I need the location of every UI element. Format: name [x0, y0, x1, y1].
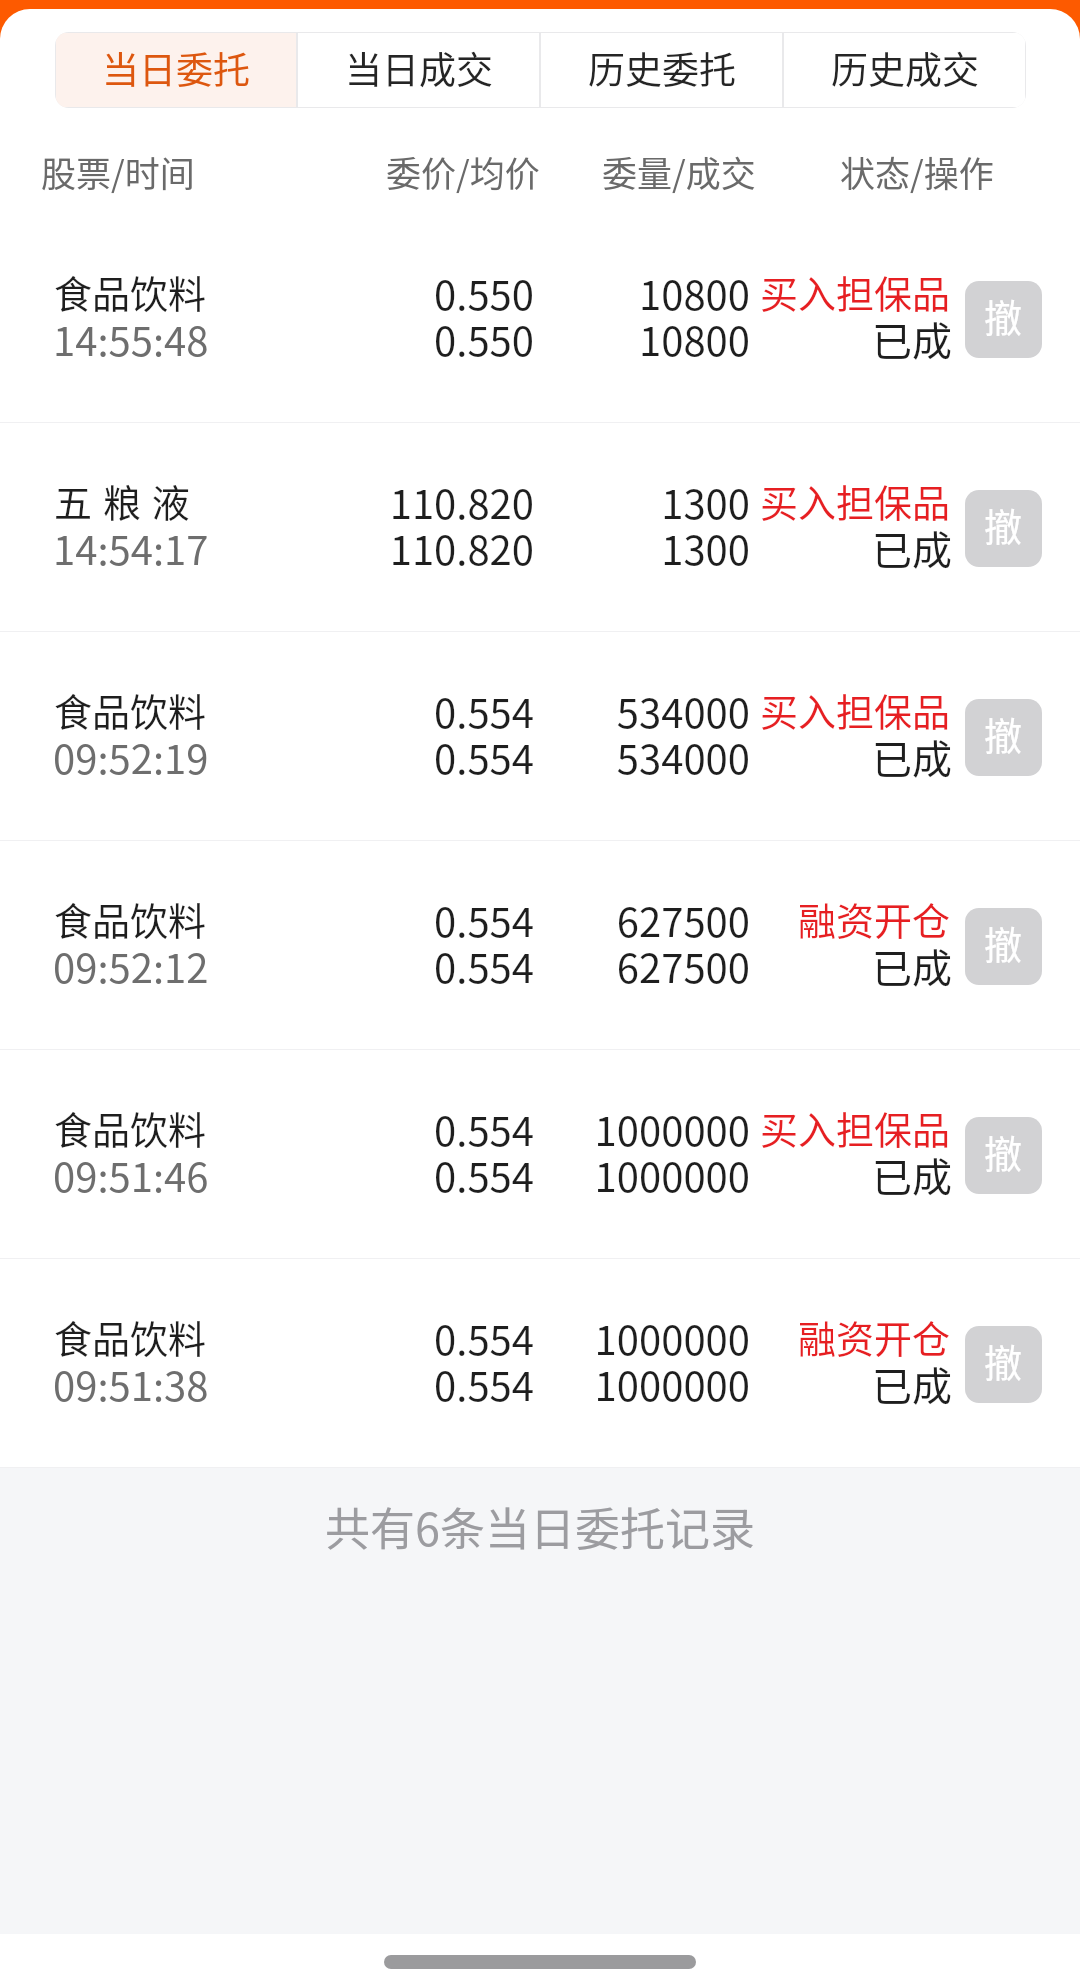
staticText: 已成 — [752, 519, 952, 577]
staticText: 已成 — [752, 728, 952, 786]
staticText: 0.554 — [334, 1309, 534, 1367]
staticText: 当日委托 — [102, 41, 250, 95]
staticText: 委价/均价 — [386, 146, 540, 197]
staticText: 0.554 — [334, 891, 534, 949]
staticText: 10800 — [550, 264, 750, 322]
staticText: 历史成交 — [831, 41, 979, 95]
button[interactable]: 撤单 — [965, 281, 1042, 358]
staticText: 1000000 — [550, 1355, 750, 1413]
staticText: 534000 — [550, 682, 750, 740]
button[interactable]: 食品饮料 — [0, 214, 1080, 422]
staticText: 110.820 — [334, 519, 534, 577]
staticText: 0.554 — [334, 1146, 534, 1204]
staticText: 融资开仓 — [750, 891, 950, 946]
button[interactable]: 食品饮料 — [0, 632, 1080, 840]
staticText: 0.554 — [334, 1355, 534, 1413]
staticText: 食品饮料 — [54, 1309, 207, 1364]
staticText: 股票/时间 — [41, 146, 195, 197]
staticText: 09:52:12 — [53, 937, 209, 995]
staticText: 当日成交 — [345, 41, 493, 95]
button[interactable]: 当日委托 — [56, 33, 296, 107]
button[interactable]: 当日成交 — [298, 33, 539, 107]
staticText: 0.550 — [334, 264, 534, 322]
staticText: 食品饮料 — [54, 891, 207, 946]
staticText: 融资开仓 — [750, 1309, 950, 1364]
button[interactable]: 食品饮料 — [0, 1259, 1080, 1467]
staticText: 撤 — [984, 1124, 1023, 1179]
staticText: 五 粮 液 — [54, 473, 190, 528]
staticText: 534000 — [550, 728, 750, 786]
staticText: 1300 — [550, 519, 750, 577]
staticText: 已成 — [752, 1355, 952, 1413]
staticText: 09:51:46 — [53, 1146, 209, 1204]
staticText: 食品饮料 — [54, 682, 207, 737]
button[interactable]: 撤单 — [965, 908, 1042, 985]
button[interactable]: 撤单 — [965, 490, 1042, 567]
staticText: 已成 — [752, 937, 952, 995]
staticText: 撤 — [984, 1333, 1023, 1388]
staticText: 撤 — [984, 915, 1023, 970]
staticText: 委量/成交 — [602, 146, 756, 197]
staticText: 买入担保品 — [750, 1100, 950, 1155]
button[interactable]: 历史成交 — [784, 33, 1025, 107]
button[interactable]: 撤单 — [965, 1117, 1042, 1194]
staticText: 撤 — [984, 497, 1023, 552]
button[interactable]: 历史委托 — [541, 33, 782, 107]
button[interactable]: 撤单 — [965, 699, 1042, 776]
staticText: 627500 — [550, 937, 750, 995]
staticText: 10800 — [550, 310, 750, 368]
button[interactable]: 食品饮料 — [0, 1050, 1080, 1258]
staticText: 09:51:38 — [53, 1355, 209, 1413]
staticText: 已成 — [752, 1146, 952, 1204]
staticText: 1000000 — [550, 1100, 750, 1158]
button[interactable]: 五 粮 液 — [0, 423, 1080, 631]
staticText: 撤 — [984, 288, 1023, 343]
staticText: 已成 — [752, 310, 952, 368]
staticText: 买入担保品 — [750, 264, 950, 319]
staticText: 状态/操作 — [840, 146, 994, 197]
staticText: 1000000 — [550, 1146, 750, 1204]
staticText: 0.554 — [334, 728, 534, 786]
staticText: 1300 — [550, 473, 750, 531]
staticText: 0.554 — [334, 937, 534, 995]
staticText: 食品饮料 — [54, 264, 207, 319]
staticText: 09:52:19 — [53, 728, 209, 786]
staticText: 14:54:17 — [53, 519, 209, 577]
staticText: 共有6条当日委托记录 — [325, 1494, 755, 1559]
button[interactable]: 撤单 — [965, 1326, 1042, 1403]
button[interactable]: 食品饮料 — [0, 841, 1080, 1049]
staticText: 历史委托 — [588, 41, 736, 95]
staticText: 0.554 — [334, 682, 534, 740]
staticText: 110.820 — [334, 473, 534, 531]
staticText: 1000000 — [550, 1309, 750, 1367]
staticText: 买入担保品 — [750, 473, 950, 528]
staticText: 撤 — [984, 706, 1023, 761]
staticText: 0.550 — [334, 310, 534, 368]
staticText: 14:55:48 — [53, 310, 209, 368]
staticText: 买入担保品 — [750, 682, 950, 737]
staticText: 627500 — [550, 891, 750, 949]
staticText: 食品饮料 — [54, 1100, 207, 1155]
staticText: 0.554 — [334, 1100, 534, 1158]
